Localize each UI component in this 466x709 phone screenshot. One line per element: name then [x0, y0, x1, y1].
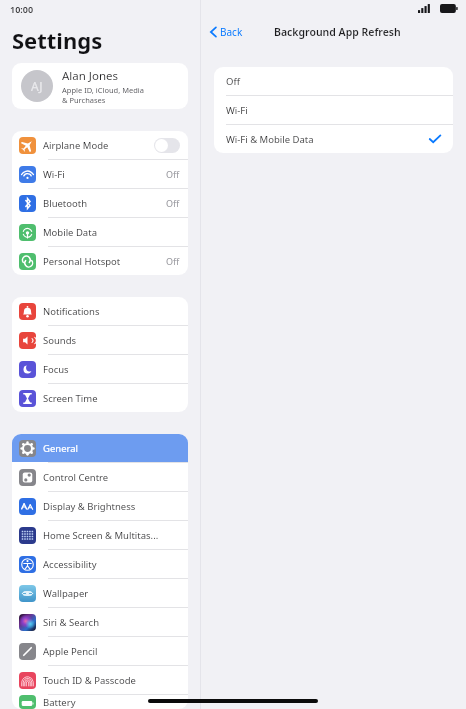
staticText: Apple Pencil — [43, 645, 180, 658]
button[interactable]: Bluetooth — [12, 189, 188, 217]
button[interactable]: Accessibility — [12, 550, 188, 578]
button[interactable]: Wi-Fi & Mobile Data — [214, 125, 453, 153]
button[interactable]: Focus — [12, 355, 188, 383]
staticText: Home Screen & Multitas... — [43, 529, 180, 542]
button[interactable]: Notifications — [12, 297, 188, 325]
staticText: Accessibility — [43, 558, 180, 571]
button[interactable]: Wallpaper — [12, 579, 188, 607]
button[interactable]: Touch ID & Passcode — [12, 666, 188, 694]
staticText: & Purchases — [62, 95, 106, 105]
button[interactable]: Apple Pencil — [12, 637, 188, 665]
staticText: Bluetooth — [43, 197, 166, 210]
staticText: Off — [166, 255, 180, 267]
staticText: Screen Time — [43, 392, 180, 405]
button[interactable]: Off — [214, 67, 453, 95]
staticText: Wi-Fi & Mobile Data — [226, 133, 429, 146]
button[interactable]: Airplane Mode — [12, 131, 188, 159]
button[interactable]: Siri & Search — [12, 608, 188, 636]
staticText: Background App Refresh — [274, 25, 401, 39]
staticText: Battery — [43, 696, 180, 709]
staticText: Mobile Data — [43, 226, 180, 239]
staticText: Display & Brightness — [43, 500, 180, 513]
staticText: Back — [220, 25, 243, 39]
button[interactable]: Mobile Data — [12, 218, 188, 246]
staticText: Wi-Fi — [43, 168, 166, 181]
staticText: Apple ID, iCloud, Media — [62, 85, 144, 95]
staticText: Airplane Mode — [43, 139, 154, 152]
staticText: Off — [166, 197, 180, 209]
button[interactable]: General — [12, 434, 188, 462]
button[interactable]: Battery — [12, 695, 188, 709]
staticText: AJ — [31, 78, 43, 94]
button[interactable]: Control Centre — [12, 463, 188, 491]
staticText: Notifications — [43, 305, 180, 318]
staticText: Sounds — [43, 334, 180, 347]
button[interactable]: Screen Time — [12, 384, 188, 412]
staticText: Off — [166, 168, 180, 180]
button[interactable]: Personal Hotspot — [12, 247, 188, 275]
staticText: Wallpaper — [43, 587, 180, 600]
staticText: Siri & Search — [43, 616, 180, 629]
button[interactable]: Wi-Fi — [214, 96, 453, 124]
staticText: Touch ID & Passcode — [43, 674, 180, 687]
button[interactable]: Airplane Mode toggle — [154, 138, 180, 153]
staticText: Settings — [12, 25, 103, 55]
button[interactable]: Home Screen & Multitas... — [12, 521, 188, 549]
staticText: Alan Jones — [62, 68, 119, 84]
staticText: Personal Hotspot — [43, 255, 166, 268]
button[interactable]: Sounds — [12, 326, 188, 354]
staticText: Wi-Fi — [226, 104, 441, 117]
button[interactable]: Wi-Fi — [12, 160, 188, 188]
staticText: General — [43, 442, 180, 455]
staticText: Focus — [43, 363, 180, 376]
button[interactable]: Back — [207, 23, 246, 41]
staticText: 10:00 — [10, 3, 34, 15]
button[interactable]: AJ — [12, 63, 188, 109]
staticText: Off — [226, 75, 441, 88]
button[interactable]: Display & Brightness — [12, 492, 188, 520]
staticText: Control Centre — [43, 471, 180, 484]
